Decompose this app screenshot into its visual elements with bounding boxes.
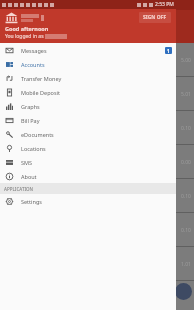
button[interactable]: Transfer Money <box>0 71 176 85</box>
staticText: Accounts <box>21 61 172 68</box>
staticText: About <box>21 173 172 180</box>
staticText: Good afternoon <box>5 25 49 32</box>
button[interactable]: Graphs <box>0 99 176 113</box>
staticText: Mobile Deposit <box>21 89 172 96</box>
button[interactable]: Locations <box>0 141 176 155</box>
staticText: Graphs <box>21 103 172 110</box>
staticText: 5.00 <box>181 57 191 64</box>
staticText: 0.10 <box>181 125 191 132</box>
staticText: 0.10 <box>181 227 191 234</box>
staticText: 5.01 <box>181 91 191 98</box>
staticText: 2:53 PM <box>155 1 174 8</box>
staticText: Locations <box>21 145 172 152</box>
staticText: You logged in as <box>5 33 45 40</box>
button[interactable]: SMS <box>0 155 176 169</box>
staticText: 0.10 <box>181 193 191 200</box>
staticText: eDocuments <box>21 131 172 138</box>
button[interactable]: eDocuments <box>0 127 176 141</box>
staticText: 0.00 <box>181 159 191 166</box>
button[interactable]: Messages <box>0 43 176 57</box>
staticText: SMS <box>21 159 172 166</box>
staticText: SIGN OFF <box>143 14 167 21</box>
staticText: Settings <box>21 198 172 205</box>
button[interactable]: Settings <box>0 194 176 208</box>
button[interactable]: SIGN OFF <box>139 12 171 23</box>
button[interactable]: Bill Pay <box>0 113 176 127</box>
staticText: Messages <box>21 47 165 54</box>
staticText: 1.01 <box>181 261 191 268</box>
staticText: Bill Pay <box>21 117 172 124</box>
button[interactable]: Mobile Deposit <box>0 85 176 99</box>
button[interactable]: Add <box>175 283 192 300</box>
staticText: APPLICATION <box>4 186 34 192</box>
button[interactable]: About <box>0 169 176 183</box>
staticText: Transfer Money <box>21 75 172 82</box>
staticText: 1 <box>167 48 170 54</box>
button[interactable]: Accounts <box>0 57 176 71</box>
